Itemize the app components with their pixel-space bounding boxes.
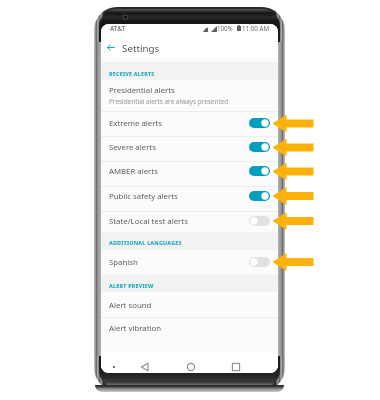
- staticText: ALERT PREVIEW: [109, 282, 154, 289]
- button[interactable]: Presidential alerts: [101, 85, 278, 111]
- button[interactable]: Extreme alerts: [101, 111, 278, 135]
- button[interactable]: Back: [103, 39, 119, 55]
- staticText: Extreme alerts: [109, 118, 249, 129]
- button[interactable]: Alert vibration: [101, 316, 278, 340]
- staticText: Spanish: [109, 257, 249, 268]
- button[interactable]: Back: [137, 360, 153, 373]
- button[interactable]: Settings: [122, 42, 160, 55]
- staticText: ADDITIONAL LANGUAGES: [109, 239, 182, 246]
- button[interactable]: Home: [184, 360, 198, 373]
- staticText: RECEIVE ALERTS: [109, 70, 155, 77]
- button[interactable]: Public safety alerts: [101, 184, 278, 208]
- button[interactable]: Spanish: [101, 250, 278, 274]
- staticText: Public safety alerts: [109, 191, 249, 202]
- button[interactable]: Recent apps: [229, 360, 243, 373]
- staticText: Presidential alerts are always presented: [109, 97, 229, 106]
- staticText: AMBER alerts: [109, 166, 249, 177]
- button[interactable]: Severe alerts: [101, 135, 278, 159]
- staticText: 100%: [217, 24, 233, 32]
- staticText: Severe alerts: [109, 142, 249, 153]
- button[interactable]: Alert sound: [101, 293, 278, 317]
- staticText: Presidential alerts: [109, 85, 175, 96]
- button[interactable]: State/Local test alerts: [101, 209, 278, 233]
- staticText: 11:00 AM: [242, 24, 269, 32]
- staticText: State/Local test alerts: [109, 216, 249, 227]
- staticText: AT&T: [110, 24, 126, 33]
- staticText: Alert sound: [109, 300, 152, 311]
- staticText: Alert vibration: [109, 323, 162, 334]
- button[interactable]: AMBER alerts: [101, 159, 278, 183]
